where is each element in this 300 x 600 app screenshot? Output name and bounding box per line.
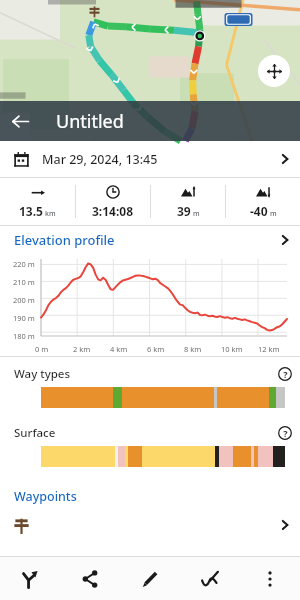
staticText: 8 km	[184, 344, 202, 354]
button[interactable]: -40	[226, 178, 300, 225]
button[interactable]: Mar 29, 2024, 13:45	[0, 141, 300, 177]
staticText: 12 km	[258, 344, 280, 354]
staticText: ?	[283, 427, 288, 439]
staticText: km	[45, 209, 56, 219]
button[interactable]: Edit	[120, 557, 180, 600]
staticText: Surface	[14, 425, 56, 441]
staticText: m	[270, 209, 277, 219]
staticText: 190 m	[13, 313, 35, 323]
button[interactable]: More options	[240, 557, 300, 600]
button[interactable]: 13.5	[0, 178, 75, 225]
button[interactable]: Way types info	[270, 361, 300, 387]
staticText: 2 km	[73, 344, 91, 354]
button[interactable]: Center map	[258, 55, 290, 87]
staticText: 13.5	[19, 203, 43, 219]
staticText: 6 km	[147, 344, 165, 354]
button[interactable]	[41, 387, 285, 408]
button[interactable]	[0, 507, 300, 543]
staticText: 180 m	[13, 331, 35, 341]
staticText: -40	[250, 203, 268, 219]
staticText: ?	[283, 368, 288, 380]
button[interactable]: 39	[151, 178, 225, 225]
staticText: 210 m	[13, 277, 35, 287]
button[interactable]: Surface info	[270, 420, 300, 446]
staticText: 3:14:08	[92, 203, 134, 219]
staticText: Waypoints	[14, 488, 77, 505]
button[interactable]: Share	[60, 557, 120, 600]
staticText: m	[193, 209, 200, 219]
staticText: 220 m	[13, 259, 35, 269]
staticText: 10 km	[221, 344, 243, 354]
button[interactable]: Simplify track	[180, 557, 240, 600]
button[interactable]	[41, 446, 285, 467]
staticText: Mar 29, 2024, 13:45	[42, 151, 158, 168]
staticText: 0 m	[35, 344, 49, 354]
staticText: 200 m	[13, 295, 35, 305]
button[interactable]: Elevation profile	[0, 226, 300, 254]
staticText: Elevation profile	[14, 231, 115, 249]
staticText: 4 km	[110, 344, 128, 354]
staticText: Way types	[14, 366, 71, 382]
button[interactable]: 3:14:08	[76, 178, 150, 225]
staticText: Untitled	[56, 109, 124, 134]
staticText: 39	[177, 203, 191, 219]
button[interactable]: Navigate	[0, 557, 60, 600]
button[interactable]: Back	[0, 101, 40, 141]
